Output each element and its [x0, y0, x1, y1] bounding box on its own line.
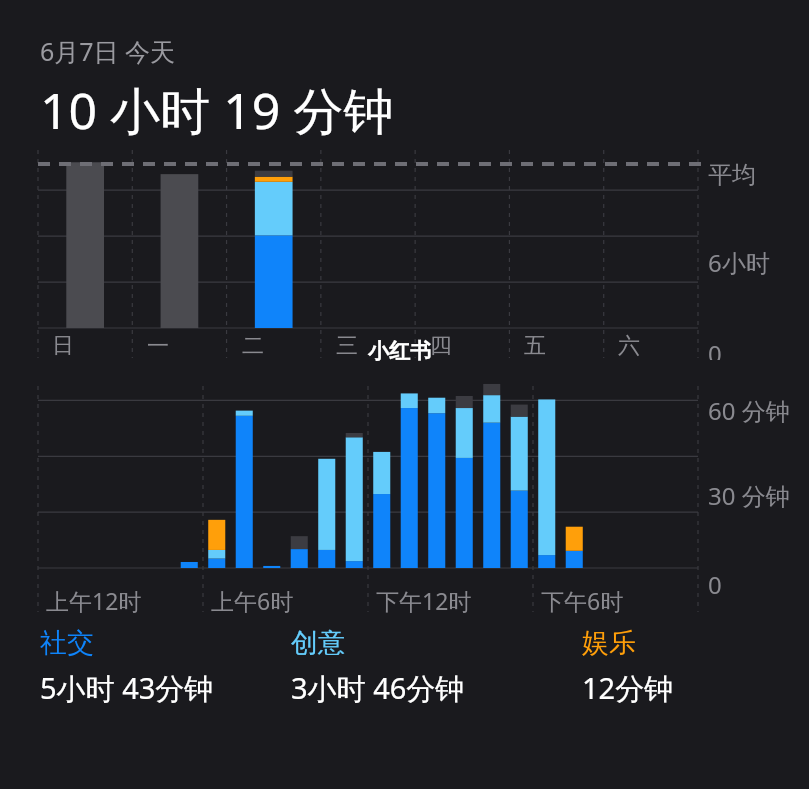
staticText: 娱乐 — [582, 626, 636, 660]
staticText: 日 — [52, 332, 74, 360]
staticText: 社交 — [40, 626, 94, 660]
staticText: 二 — [242, 332, 264, 360]
staticText: 3小时 46分钟 — [291, 668, 465, 708]
staticText: 上午12时 — [46, 585, 142, 616]
button[interactable]: 创意 — [291, 626, 582, 708]
button[interactable]: 6月7日 今天 — [0, 0, 809, 144]
staticText: 平均 — [708, 160, 756, 190]
button[interactable]: 日 — [0, 150, 809, 360]
staticText: 5小时 43分钟 — [40, 668, 214, 708]
staticText: 60 分钟 — [708, 394, 790, 427]
button[interactable]: 上午12时 — [0, 386, 809, 616]
staticText: 四 — [430, 332, 452, 360]
staticText: 六 — [618, 332, 640, 360]
staticText: 6月7日 今天 — [40, 34, 176, 68]
staticText: 上午6时 — [211, 585, 294, 616]
staticText: 创意 — [291, 626, 345, 660]
staticText: 一 — [147, 332, 169, 360]
staticText: 12分钟 — [582, 668, 674, 708]
staticText: 0 — [708, 568, 722, 601]
button[interactable]: 娱乐 — [582, 626, 809, 708]
staticText: 五 — [524, 332, 546, 360]
staticText: 6小时 — [708, 246, 770, 279]
staticText: 三 — [336, 332, 358, 360]
staticText: 30 分钟 — [708, 479, 790, 512]
staticText: 0 — [708, 337, 722, 360]
staticText: 小红书 — [368, 338, 431, 364]
staticText: 10 小时 19 分钟 — [40, 76, 394, 144]
staticText: 下午6时 — [541, 585, 624, 616]
button[interactable]: 社交 — [0, 626, 291, 708]
staticText: 下午12时 — [376, 585, 472, 616]
